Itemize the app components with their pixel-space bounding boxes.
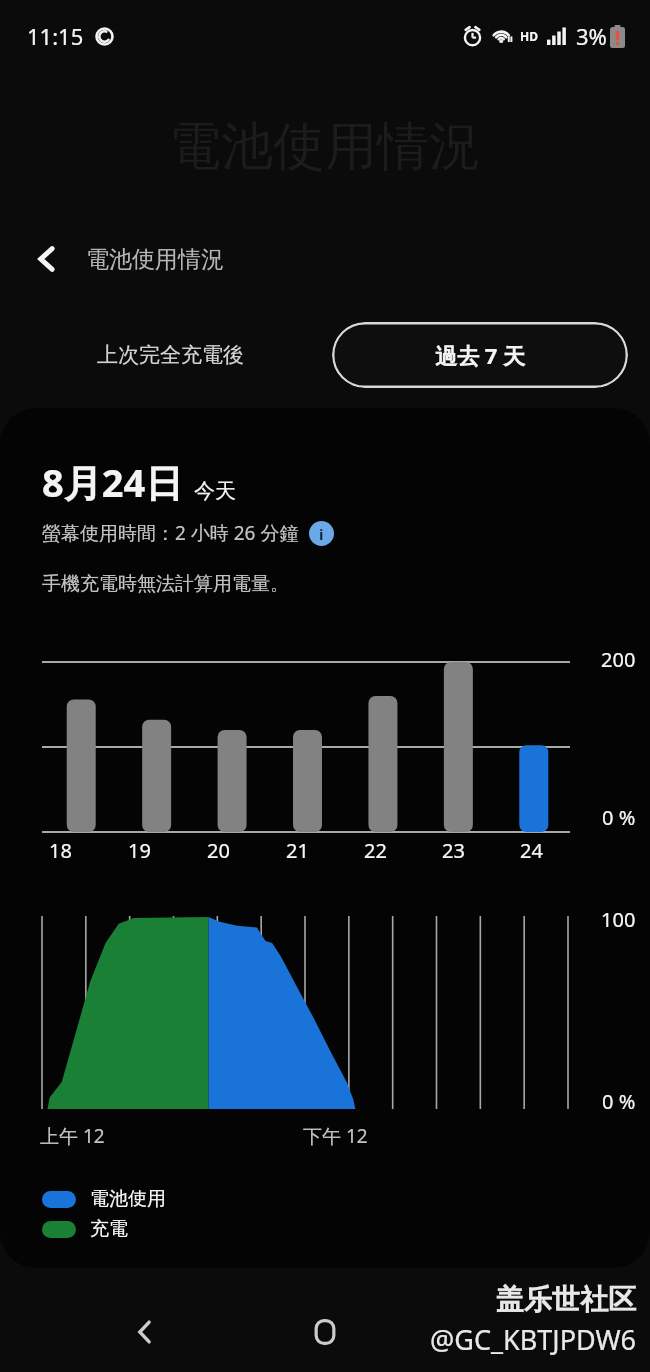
button[interactable]: Home: [289, 1296, 361, 1368]
staticText: @GC_KBTJPDW6: [430, 1321, 636, 1358]
staticText: 22: [364, 837, 387, 864]
staticText: 今天: [194, 478, 236, 504]
staticText: 充電: [90, 1217, 128, 1241]
staticText: 上次完全充電後: [97, 342, 244, 368]
staticText: 上午 12: [40, 1123, 105, 1149]
button[interactable]: Recents: [470, 1296, 542, 1368]
staticText: 手機充電時無法計算用電量。: [42, 572, 289, 596]
staticText: 24: [520, 837, 543, 864]
staticText: HD: [520, 28, 538, 44]
button[interactable]: Back: [109, 1296, 181, 1368]
staticText: 21: [286, 837, 309, 864]
staticText: 電池使用情況: [86, 245, 224, 274]
staticText: 8月24日: [42, 456, 184, 508]
button[interactable]: 上次完全充電後: [22, 325, 318, 385]
button[interactable]: Info: [309, 521, 334, 546]
button[interactable]: 過去 7 天: [332, 322, 628, 388]
staticText: 200: [601, 646, 636, 673]
staticText: 電池使用情況: [169, 114, 481, 180]
staticText: 3%: [576, 21, 607, 51]
staticText: 20: [207, 837, 230, 864]
staticText: 0 %: [602, 804, 636, 831]
staticText: 盖乐世社区: [496, 1282, 636, 1317]
staticText: 11:15: [27, 21, 84, 51]
staticText: 0 %: [602, 1088, 636, 1115]
staticText: 電池使用: [90, 1187, 166, 1211]
button[interactable]: Back: [18, 230, 76, 288]
staticText: 螢幕使用時間：2 小時 26 分鐘: [42, 520, 299, 546]
staticText: 過去 7 天: [435, 340, 526, 370]
staticText: i: [319, 524, 324, 544]
staticText: 100: [601, 906, 636, 933]
staticText: 19: [128, 837, 151, 864]
staticText: 23: [442, 837, 465, 864]
staticText: 18: [49, 837, 72, 864]
staticText: 下午 12: [303, 1123, 368, 1149]
